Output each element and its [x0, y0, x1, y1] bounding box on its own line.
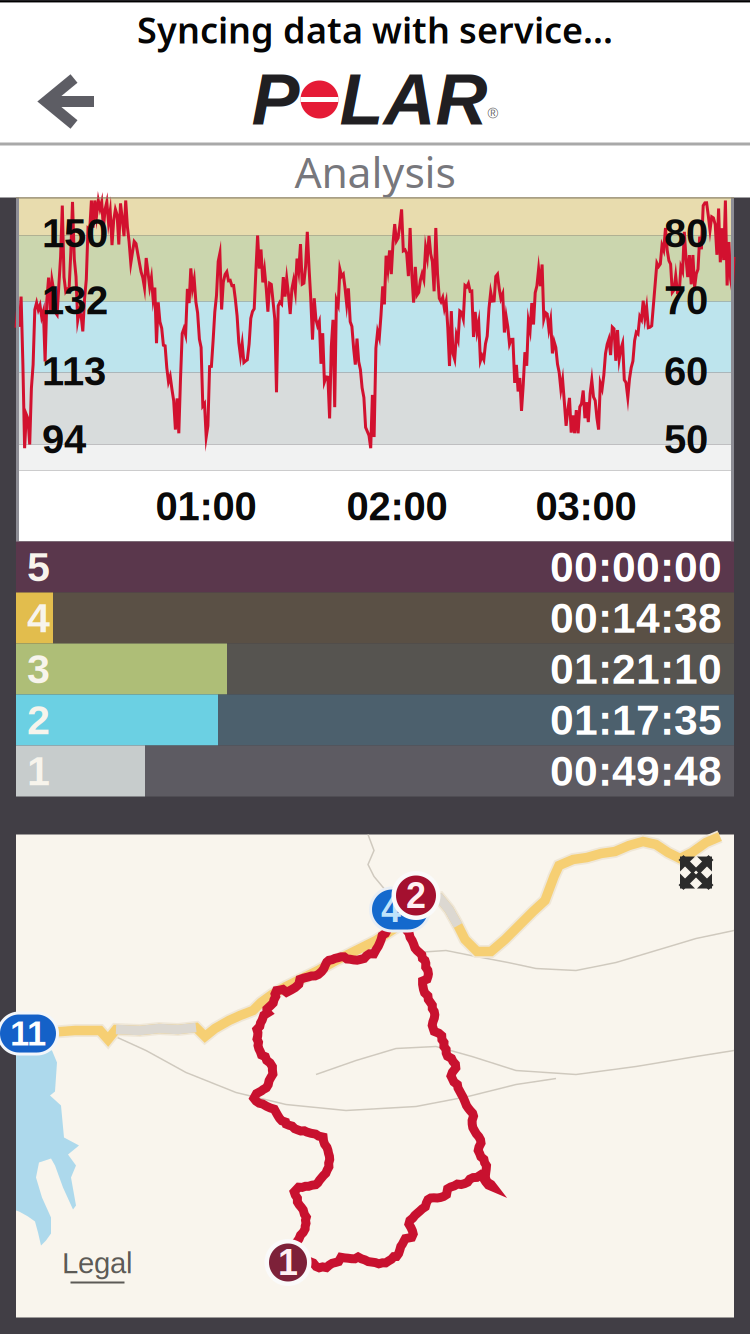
staticText: 1	[27, 748, 50, 794]
staticText: Legal	[62, 1247, 133, 1279]
button[interactable]: Expand map	[674, 850, 718, 894]
staticText: 2	[406, 875, 426, 916]
staticText: 70	[664, 278, 708, 323]
staticText: 113	[42, 349, 106, 394]
staticText: 01:21:10	[550, 645, 722, 693]
staticText: 00:14:38	[550, 594, 722, 642]
staticText: ®	[487, 105, 498, 122]
staticText: 00:49:48	[550, 747, 722, 795]
staticText: 2	[27, 697, 50, 743]
staticText: 5	[27, 544, 50, 590]
staticText: Analysis	[294, 143, 455, 200]
staticText: 03:00	[535, 484, 636, 529]
staticText: 132	[42, 278, 108, 323]
staticText: 4	[27, 595, 50, 641]
staticText: P	[251, 59, 299, 140]
staticText: 94	[42, 417, 86, 462]
staticText: LAR	[339, 59, 487, 140]
staticText: 50	[664, 417, 708, 462]
staticText: 3	[27, 646, 50, 692]
button[interactable]: Back	[0, 56, 150, 142]
staticText: 4	[381, 889, 401, 930]
staticText: 60	[664, 349, 708, 394]
staticText: 1	[278, 1242, 298, 1283]
staticText: 02:00	[346, 484, 447, 529]
staticText: 01:00	[155, 484, 256, 529]
staticText: 00:00:00	[550, 543, 722, 591]
staticText: 150	[42, 211, 108, 256]
staticText: 11	[10, 1014, 46, 1053]
staticText: 01:17:35	[550, 696, 722, 744]
button[interactable]: Legal	[62, 1247, 133, 1283]
staticText: 80	[664, 211, 708, 256]
staticText: Syncing data with service...	[137, 6, 613, 53]
